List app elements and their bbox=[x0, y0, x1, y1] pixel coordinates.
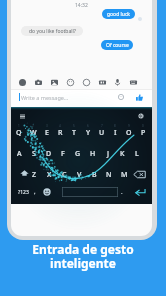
staticText: U bbox=[99, 128, 105, 138]
button[interactable]: Of course bbox=[101, 40, 133, 50]
staticText: ?123 bbox=[18, 189, 29, 196]
button[interactable]: Z bbox=[29, 170, 39, 180]
staticText: 5 bbox=[73, 124, 75, 128]
button[interactable]: 3 bbox=[42, 121, 52, 131]
staticText: 7 bbox=[101, 124, 103, 128]
staticText: 0 bbox=[142, 124, 144, 128]
button[interactable]: 8 bbox=[110, 121, 120, 131]
button[interactable]: Q bbox=[14, 128, 24, 138]
button[interactable]: 6 bbox=[83, 121, 93, 131]
staticText: Write a message... bbox=[21, 94, 69, 101]
button[interactable]: W bbox=[28, 128, 38, 138]
staticText: G bbox=[75, 149, 81, 159]
staticText: Of course bbox=[106, 42, 129, 49]
button[interactable]: Gallery bbox=[48, 76, 60, 88]
button[interactable]: Menu bbox=[17, 111, 27, 121]
staticText: . bbox=[121, 188, 123, 196]
button[interactable]: ?123 bbox=[14, 186, 33, 198]
staticText: good luck bbox=[107, 11, 130, 18]
staticText: do you like football? bbox=[29, 28, 76, 35]
staticText: W bbox=[30, 128, 37, 138]
button[interactable]: G bbox=[73, 149, 83, 159]
button[interactable]: H bbox=[88, 149, 98, 159]
staticText: 6 bbox=[87, 124, 89, 128]
button[interactable]: N bbox=[104, 170, 114, 180]
staticText: X bbox=[47, 170, 52, 180]
button[interactable]: K bbox=[117, 149, 127, 159]
button[interactable]: E bbox=[42, 128, 52, 138]
button[interactable]: 0 bbox=[138, 121, 148, 131]
button[interactable]: good luck bbox=[102, 9, 135, 19]
staticText: F bbox=[61, 149, 65, 159]
staticText: H bbox=[90, 149, 96, 159]
staticText: T bbox=[72, 128, 76, 138]
staticText: O bbox=[126, 128, 132, 138]
staticText: D bbox=[46, 149, 52, 159]
staticText: M bbox=[121, 170, 128, 180]
staticText: N bbox=[106, 170, 112, 180]
button[interactable]: Enter bbox=[134, 187, 146, 197]
button[interactable]: Camera bbox=[32, 76, 44, 88]
button[interactable]: Settings bbox=[136, 111, 146, 121]
button[interactable]: V bbox=[74, 170, 84, 180]
staticText: I bbox=[114, 128, 117, 138]
button[interactable]: Space bbox=[62, 187, 118, 197]
staticText: V bbox=[77, 170, 82, 180]
button[interactable]: J bbox=[103, 149, 113, 159]
button[interactable]: Games bbox=[96, 76, 108, 88]
staticText: C bbox=[62, 170, 67, 180]
button[interactable]: I bbox=[110, 128, 120, 138]
button[interactable]: D bbox=[44, 149, 54, 159]
button[interactable]: Y bbox=[83, 128, 93, 138]
staticText: P bbox=[141, 128, 146, 138]
staticText: 3 bbox=[46, 124, 48, 128]
button[interactable]: do you like football? bbox=[21, 26, 83, 36]
button[interactable]: 1 bbox=[14, 121, 24, 131]
button[interactable]: C bbox=[59, 170, 69, 180]
button[interactable]: 5 bbox=[69, 121, 79, 131]
button[interactable]: Stickers bbox=[64, 76, 76, 88]
staticText: Q bbox=[16, 128, 22, 138]
staticText: S bbox=[32, 149, 36, 159]
button[interactable]: 7 bbox=[97, 121, 107, 131]
staticText: 8 bbox=[114, 124, 116, 128]
staticText: B bbox=[92, 170, 97, 180]
button[interactable]: F bbox=[58, 149, 68, 159]
staticText: J bbox=[107, 149, 110, 159]
button[interactable]: S bbox=[29, 149, 39, 159]
button[interactable]: Shift bbox=[19, 168, 30, 178]
staticText: 9 bbox=[128, 124, 130, 128]
staticText: 4 bbox=[59, 124, 61, 128]
button[interactable]: Keyboard bbox=[127, 76, 139, 88]
staticText: E bbox=[45, 128, 49, 138]
staticText: A bbox=[17, 149, 22, 159]
button[interactable]: L bbox=[132, 149, 142, 159]
staticText: Z bbox=[32, 170, 37, 180]
button[interactable]: Backspace bbox=[133, 170, 146, 179]
button[interactable]: 9 bbox=[124, 121, 134, 131]
button[interactable]: R bbox=[55, 128, 65, 138]
staticText: 14:32 bbox=[75, 2, 88, 9]
button[interactable]: U bbox=[97, 128, 107, 138]
button[interactable]: B bbox=[89, 170, 99, 180]
button[interactable]: Like bbox=[134, 92, 144, 102]
button[interactable]: GIF bbox=[80, 76, 92, 88]
staticText: , bbox=[34, 188, 36, 196]
button[interactable]: O bbox=[124, 128, 134, 138]
button[interactable]: X bbox=[44, 170, 54, 180]
staticText: 2 bbox=[32, 124, 34, 128]
button[interactable]: M bbox=[119, 170, 129, 180]
button[interactable]: 2 bbox=[28, 121, 38, 131]
button[interactable]: Voice bbox=[111, 76, 123, 88]
button[interactable]: T bbox=[69, 128, 79, 138]
button[interactable]: Emoji bbox=[116, 92, 126, 102]
button[interactable]: Add bbox=[16, 76, 28, 88]
staticText: L bbox=[135, 149, 139, 159]
staticText: 1 bbox=[18, 124, 20, 128]
button[interactable]: 4 bbox=[55, 121, 65, 131]
staticText: K bbox=[120, 149, 125, 159]
button[interactable]: Emoji bbox=[43, 188, 51, 196]
button[interactable]: P bbox=[138, 128, 148, 138]
button[interactable]: A bbox=[14, 149, 24, 159]
staticText: R bbox=[58, 128, 63, 138]
